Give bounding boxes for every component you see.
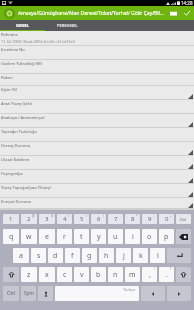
button[interactable]: 7 — [108, 214, 123, 224]
staticText: 8 — [131, 215, 135, 223]
button[interactable]: Ctrl — [3, 286, 19, 301]
button[interactable]: f — [65, 248, 80, 263]
staticText: + — [170, 214, 172, 218]
button[interactable]: Ulusal Kaldırım — [0, 156, 194, 170]
button[interactable]: y — [91, 229, 106, 244]
button[interactable]: v — [74, 267, 89, 282]
button[interactable]: 9 — [142, 214, 157, 224]
staticText: s — [37, 251, 41, 261]
staticText: Türkçe — [123, 287, 136, 292]
staticText: i — [132, 232, 134, 242]
staticText: j — [123, 251, 125, 261]
button[interactable]: l — [150, 248, 165, 263]
staticText: . — [166, 270, 168, 280]
button[interactable]: p — [159, 229, 174, 244]
staticText: , — [149, 270, 151, 280]
staticText: ~ — [15, 214, 17, 218]
button[interactable]: s — [31, 248, 46, 263]
button[interactable]: b — [91, 267, 106, 282]
button[interactable]: w — [21, 229, 37, 244]
button[interactable] — [167, 248, 191, 263]
staticText: r — [63, 232, 66, 242]
button[interactable]: Sym — [21, 286, 36, 301]
staticText: z — [27, 270, 31, 280]
staticText: Yüzey Topoğrafyası (Yüzey) — [1, 185, 52, 190]
button[interactable]: j — [116, 248, 131, 263]
button[interactable]: 8 — [125, 214, 140, 224]
button[interactable]: n — [108, 267, 123, 282]
button[interactable]: e — [39, 229, 55, 244]
button[interactable]: 1 — [3, 214, 19, 224]
button[interactable]: Eğim (%) — [0, 86, 194, 100]
button[interactable]: 6 — [91, 214, 106, 224]
button[interactable]: d — [48, 248, 63, 263]
button[interactable]: Fizyografya — [0, 170, 194, 184]
button[interactable]: Gözlem Yüksekliği (M) — [0, 60, 194, 74]
button[interactable]: Türkçe — [55, 286, 139, 301]
staticText: 1 — [9, 215, 13, 223]
button[interactable] — [38, 286, 53, 301]
button[interactable]: q — [3, 229, 19, 244]
button[interactable]: o — [142, 229, 157, 244]
button[interactable]: 0 — [159, 214, 174, 224]
button[interactable] — [3, 267, 19, 282]
button[interactable]: Save — [180, 6, 194, 20]
staticText: x — [45, 270, 49, 280]
button[interactable]: Camera — [166, 6, 180, 20]
button[interactable]: m — [125, 267, 140, 282]
staticText: n — [113, 270, 118, 280]
button[interactable]: a — [13, 248, 29, 263]
button[interactable]: PERSONEL — [45, 20, 90, 31]
button[interactable] — [141, 286, 165, 301]
button[interactable]: r — [57, 229, 72, 244]
button[interactable]: . — [159, 267, 174, 282]
button[interactable]: c — [57, 267, 72, 282]
staticText: y — [97, 232, 101, 242]
button[interactable] — [167, 286, 191, 301]
button[interactable]: Inceleme No — [0, 46, 194, 60]
staticText: Inceleme No — [1, 47, 25, 52]
staticText: 5 — [80, 215, 84, 223]
button[interactable]: i — [125, 229, 140, 244]
staticText: Anakaya / Anamateryal — [1, 115, 45, 120]
staticText: 6 — [97, 215, 101, 223]
button[interactable]: , — [142, 267, 157, 282]
button[interactable]: Referans — [0, 31, 194, 46]
staticText: 7 — [114, 215, 118, 223]
staticText: ? — [170, 267, 172, 271]
button[interactable]: 5 — [74, 214, 89, 224]
button[interactable]: h — [99, 248, 114, 263]
staticText: m — [129, 270, 136, 280]
button[interactable]: 3 — [39, 214, 55, 224]
button[interactable]: Rakım — [0, 74, 194, 86]
button[interactable]: g — [82, 248, 97, 263]
staticText: k — [139, 251, 143, 261]
button[interactable]: Yüzey Topoğrafyası (Yüzey) — [0, 184, 194, 198]
button[interactable]: t — [74, 229, 89, 244]
staticText: 0 — [165, 215, 169, 223]
button[interactable]: 2 — [21, 214, 37, 224]
button[interactable] — [176, 229, 191, 244]
button[interactable]: u — [108, 229, 123, 244]
button[interactable]: x — [39, 267, 55, 282]
button[interactable]: Anakaya / Anamateryal — [0, 114, 194, 128]
staticText: Fizyografya — [1, 171, 23, 176]
staticText: : — [154, 214, 155, 218]
other: App logo — [4, 8, 15, 19]
button[interactable]: Drenaj Durumu — [0, 142, 194, 156]
button[interactable]: Del — [176, 214, 191, 224]
staticText: @ — [32, 214, 35, 218]
button[interactable]: z — [21, 267, 37, 282]
button[interactable]: Enerjet Durumu — [0, 198, 194, 209]
button[interactable]: GENEL — [0, 20, 45, 31]
button[interactable]: Toprağın Tuzluluğu — [0, 128, 194, 142]
staticText: GENEL — [16, 23, 29, 28]
staticText: 9 — [148, 215, 152, 223]
button[interactable] — [176, 267, 191, 282]
staticText: q — [9, 232, 14, 242]
button[interactable]: k — [133, 248, 148, 263]
button[interactable]: 4 — [57, 214, 72, 224]
button[interactable]: Arazi Yüzey Şekli — [0, 100, 194, 114]
staticText: Sym — [24, 290, 34, 297]
